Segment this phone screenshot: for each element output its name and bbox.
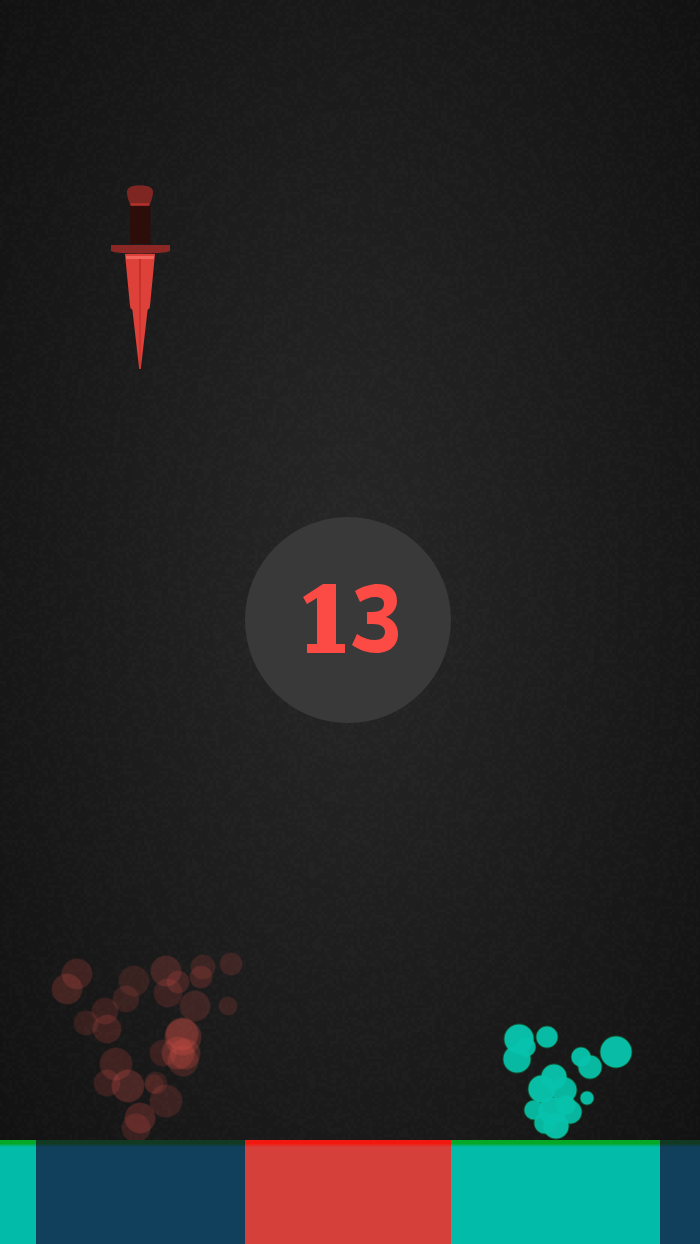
button[interactable]: Knife throwing game board xyxy=(0,0,700,1244)
button[interactable]: Score 13 xyxy=(245,517,451,723)
